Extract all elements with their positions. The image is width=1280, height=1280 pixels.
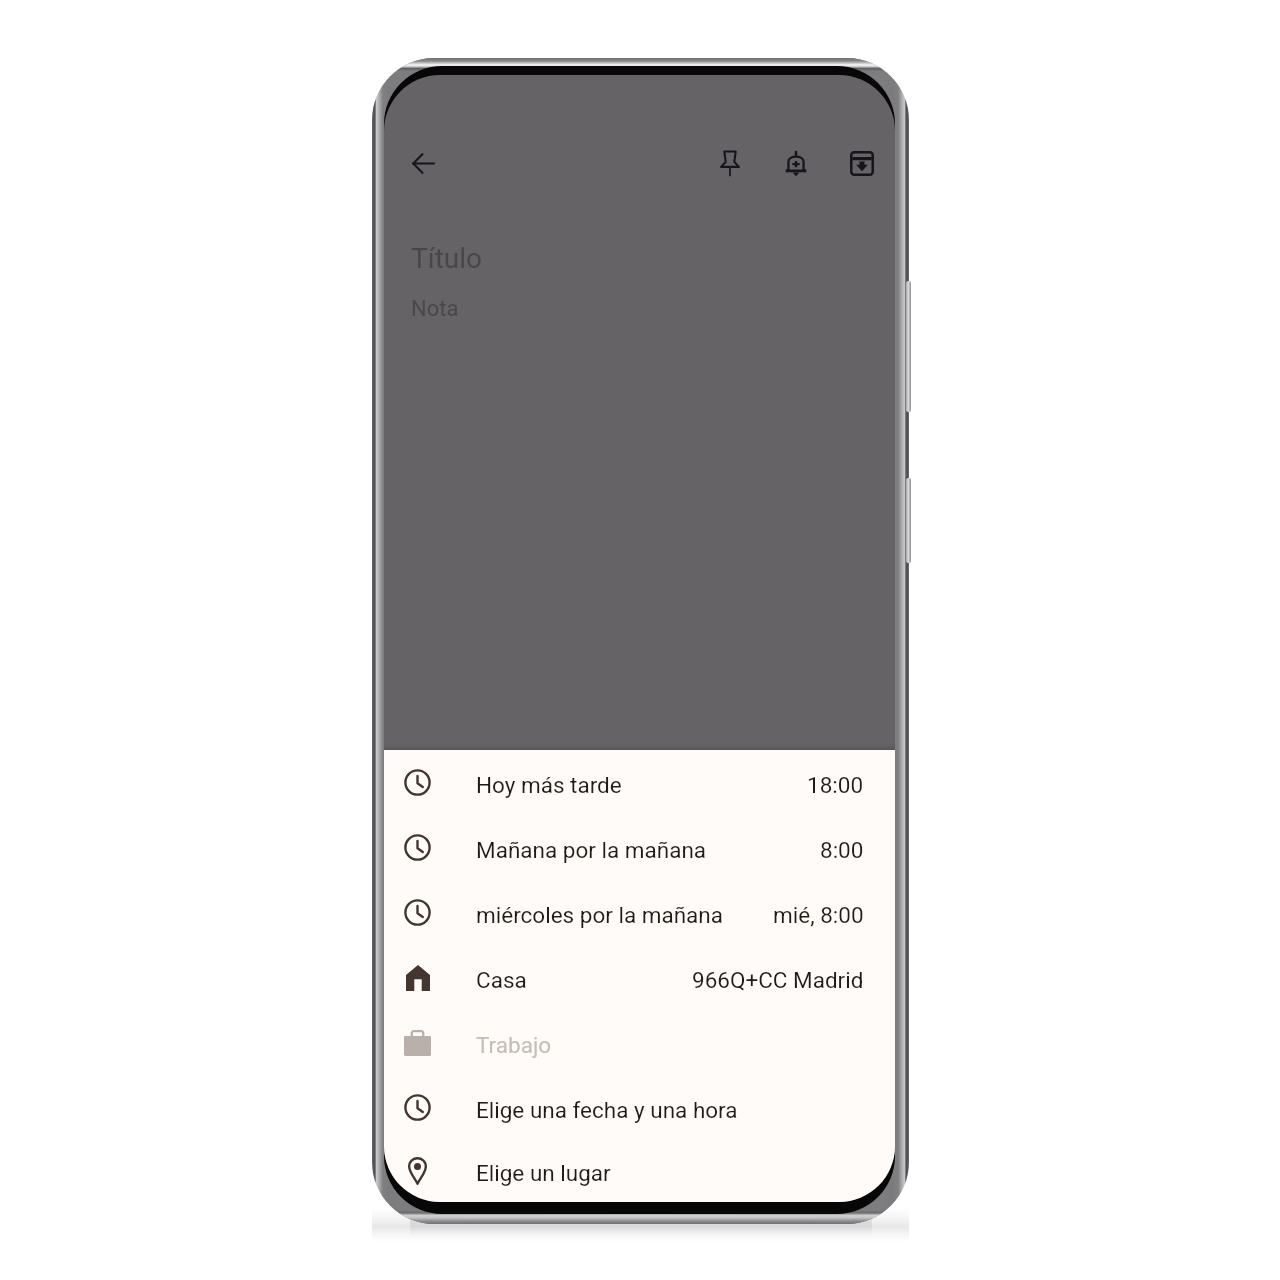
staticText: Trabajo [476, 1032, 552, 1058]
button[interactable]: Archive [838, 139, 886, 187]
staticText: Hoy más tarde [476, 772, 622, 798]
button[interactable]: Hoy más tarde [384, 750, 895, 815]
button[interactable]: Back [399, 139, 447, 187]
staticText: Casa [476, 967, 527, 993]
staticText: Elige un lugar [476, 1160, 611, 1186]
button[interactable]: Casa [384, 945, 895, 1010]
staticText: 8:00 [820, 837, 864, 863]
staticText: Título [411, 242, 483, 275]
button[interactable]: miércoles por la mañana [384, 880, 895, 945]
staticText: miércoles por la mañana [476, 902, 724, 928]
button[interactable]: Elige un lugar [384, 1140, 895, 1202]
button[interactable]: Add reminder [772, 139, 820, 187]
button[interactable]: Trabajo [384, 1010, 895, 1075]
staticText: Nota [411, 296, 459, 322]
staticText: 18:00 [807, 772, 864, 798]
staticText: Mañana por la mañana [476, 837, 707, 863]
staticText: 966Q+CC Madrid [692, 967, 864, 993]
staticText: mié, 8:00 [773, 902, 864, 928]
staticText: Elige una fecha y una hora [476, 1097, 738, 1123]
button[interactable]: Elige una fecha y una hora [384, 1075, 895, 1140]
button[interactable]: Mañana por la mañana [384, 815, 895, 880]
button[interactable]: Pin [706, 139, 754, 187]
